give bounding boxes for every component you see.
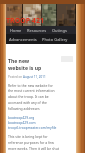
staticText: The new website is up xyxy=(8,58,50,72)
staticText: Resources xyxy=(27,28,47,33)
button[interactable]: Photo Gallery xyxy=(37,34,68,44)
button[interactable]: Outings xyxy=(47,26,67,34)
staticText: TROOP 421 xyxy=(6,16,44,26)
button[interactable]: Resources xyxy=(22,26,47,34)
staticText: Refer to the new website for the most cu… xyxy=(8,83,59,111)
staticText: Photo Gallery xyxy=(42,37,68,42)
staticText: This site is being kept for reference pu… xyxy=(8,134,59,153)
button[interactable]: Home xyxy=(6,26,22,34)
staticText: Home xyxy=(10,28,22,33)
staticText: Posted on xyxy=(8,75,23,79)
staticText: Outings xyxy=(52,28,67,33)
button[interactable]: August 11, 2011 xyxy=(23,75,46,79)
staticText: Advancements xyxy=(9,37,37,42)
button[interactable]: boatroop429.org boatroop429.com troop6.t… xyxy=(8,115,57,130)
button[interactable]: Advancements xyxy=(6,34,37,44)
